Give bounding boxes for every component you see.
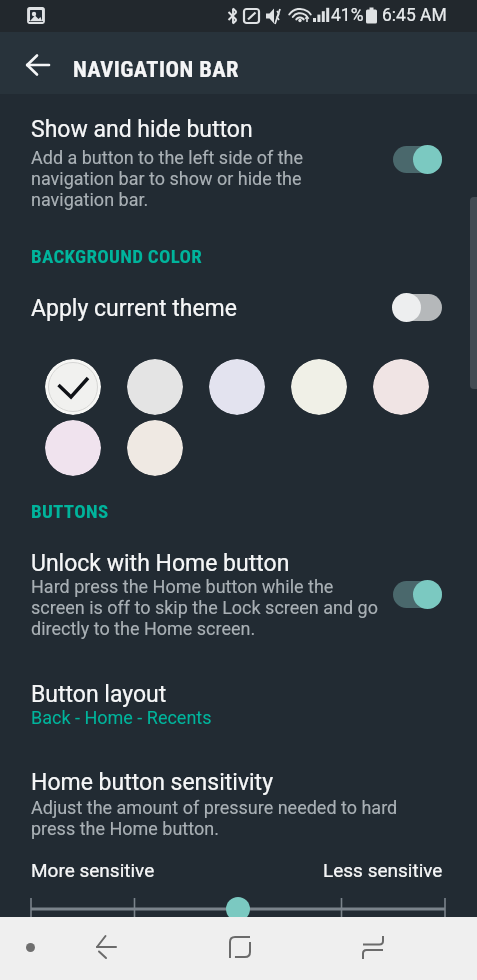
button[interactable]: Toggle on — [392, 580, 442, 609]
button[interactable]: Menu — [6, 923, 54, 971]
button[interactable]: Colour option — [291, 359, 347, 415]
staticText: 41% — [331, 5, 364, 26]
staticText: Less sensitive — [323, 859, 443, 881]
button[interactable]: Home button sensitivity slider — [0, 890, 477, 926]
button[interactable]: Back — [82, 923, 130, 971]
button[interactable]: Colour option — [209, 359, 265, 415]
button[interactable]: Colour option — [127, 420, 183, 476]
staticText: Unlock with Home button — [31, 550, 290, 577]
button[interactable]: Colour option — [127, 359, 183, 415]
button[interactable]: Colour option — [45, 420, 101, 476]
button[interactable]: Button layout — [0, 666, 477, 742]
staticText: BACKGROUND COLOR — [31, 245, 203, 267]
staticText: BUTTONS — [31, 500, 109, 522]
staticText: NAVIGATION BAR — [73, 56, 239, 82]
staticText: Home button sensitivity — [31, 769, 274, 796]
staticText: 6:45 AM — [382, 5, 447, 26]
staticText: Add a button to the left side of the nav… — [31, 147, 304, 210]
button[interactable]: Home — [216, 923, 264, 971]
button[interactable]: Recents — [349, 923, 397, 971]
staticText: Apply current theme — [31, 295, 237, 322]
button[interactable]: Colour option — [45, 359, 101, 415]
staticText: More sensitive — [31, 859, 155, 881]
button[interactable]: Navigate up — [10, 41, 65, 89]
button[interactable]: Toggle on — [392, 145, 442, 174]
staticText: Button layout — [31, 681, 167, 708]
button[interactable]: Show and hide button — [0, 94, 477, 212]
staticText: Show and hide button — [31, 116, 253, 143]
button[interactable]: Colour option — [373, 359, 429, 415]
staticText: Hard press the Home button while the scr… — [31, 576, 378, 639]
button[interactable]: Toggle off — [392, 293, 442, 322]
button[interactable]: Unlock with Home button — [0, 530, 477, 648]
staticText: Adjust the amount of pressure needed to … — [31, 797, 398, 839]
button[interactable]: Apply current theme — [0, 280, 477, 336]
staticText: Back - Home - Recents — [31, 707, 212, 728]
